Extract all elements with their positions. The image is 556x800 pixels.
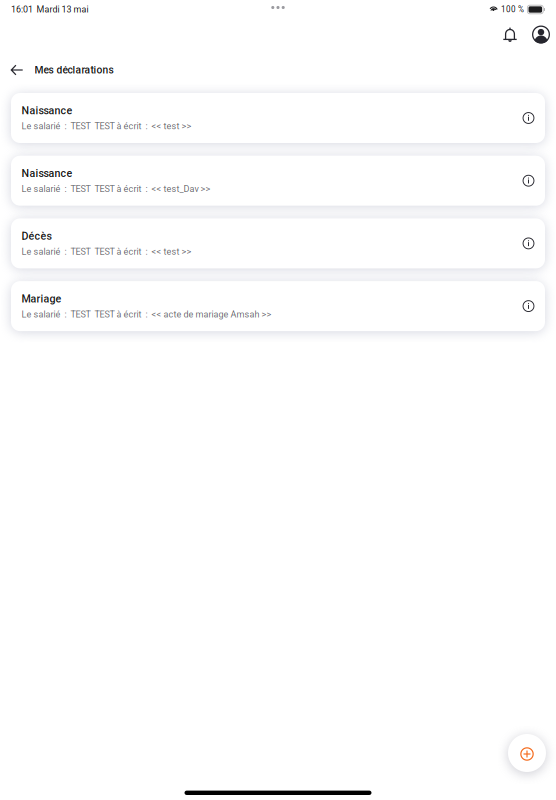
staticText: 16:01 [11, 4, 33, 15]
staticText: Naissance [22, 167, 73, 180]
button[interactable]: Naissance [11, 156, 545, 206]
button[interactable]: Décès [11, 218, 545, 268]
staticText: Le salarié : TEST TEST à écrit : << test… [22, 121, 192, 131]
staticText: Le salarié : TEST TEST à écrit : << acte… [22, 309, 272, 320]
staticText: Mariage [22, 292, 62, 305]
staticText: Naissance [22, 104, 73, 117]
button[interactable]: Naissance [11, 93, 545, 143]
button[interactable]: Mariage [11, 281, 545, 331]
button[interactable]: Notifications [503, 26, 517, 42]
staticText: Mes déclarations [34, 64, 113, 76]
button[interactable]: Retour [0, 57, 34, 83]
staticText: Le salarié : TEST TEST à écrit : << test… [22, 184, 211, 194]
staticText: Mardi 13 mai [36, 4, 88, 15]
staticText: 100 % [501, 5, 524, 14]
button[interactable]: Ajouter une déclaration [508, 734, 546, 772]
staticText: Décès [22, 230, 52, 242]
button[interactable]: Compte [532, 25, 550, 43]
staticText: Le salarié : TEST TEST à écrit : << test… [22, 246, 192, 257]
